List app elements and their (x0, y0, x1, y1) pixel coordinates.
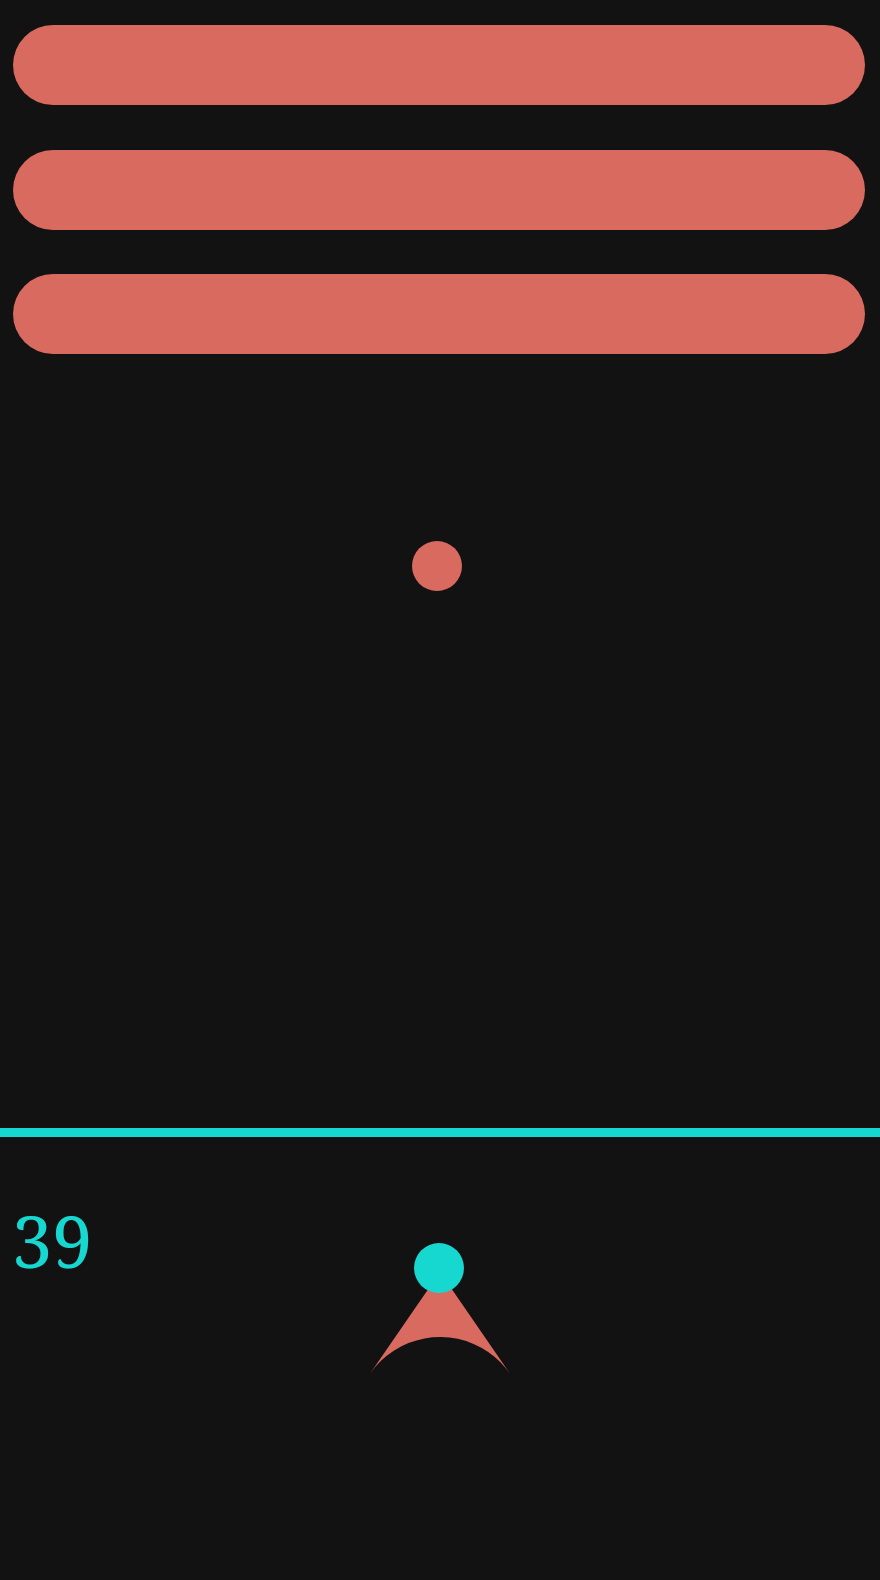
button[interactable]: Bounce game board (0, 0, 880, 1580)
